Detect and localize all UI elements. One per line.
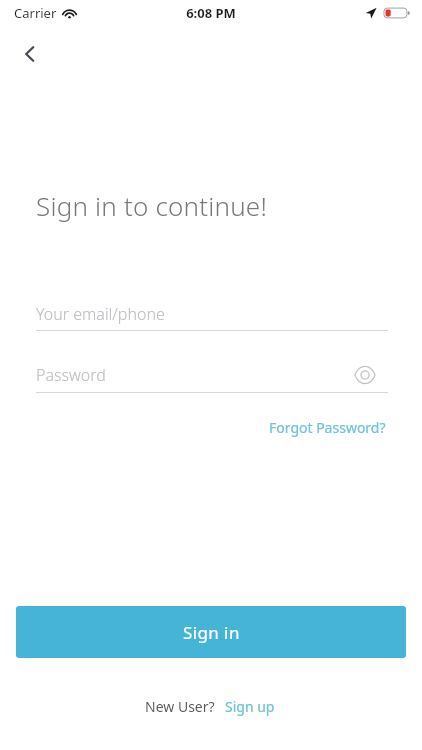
button[interactable]: Show password	[348, 358, 382, 392]
staticText: Forgot Password?	[269, 418, 386, 437]
button[interactable]: Your email/phone	[36, 296, 388, 332]
button[interactable]: Sign up	[223, 694, 277, 719]
staticText: Sign up	[225, 697, 275, 716]
button[interactable]: Sign in	[16, 606, 406, 658]
button[interactable]: Forgot Password?	[267, 414, 388, 441]
staticText: 6:08 PM	[186, 4, 236, 22]
staticText: New User?	[145, 697, 215, 716]
staticText: Carrier	[14, 4, 57, 22]
staticText: Your email/phone	[36, 303, 165, 325]
button[interactable]: Back	[8, 32, 52, 76]
staticText: Sign in	[183, 621, 240, 644]
staticText: Password	[36, 364, 106, 386]
button[interactable]: Password	[36, 357, 388, 393]
staticText: Sign in to continue!	[36, 188, 267, 223]
